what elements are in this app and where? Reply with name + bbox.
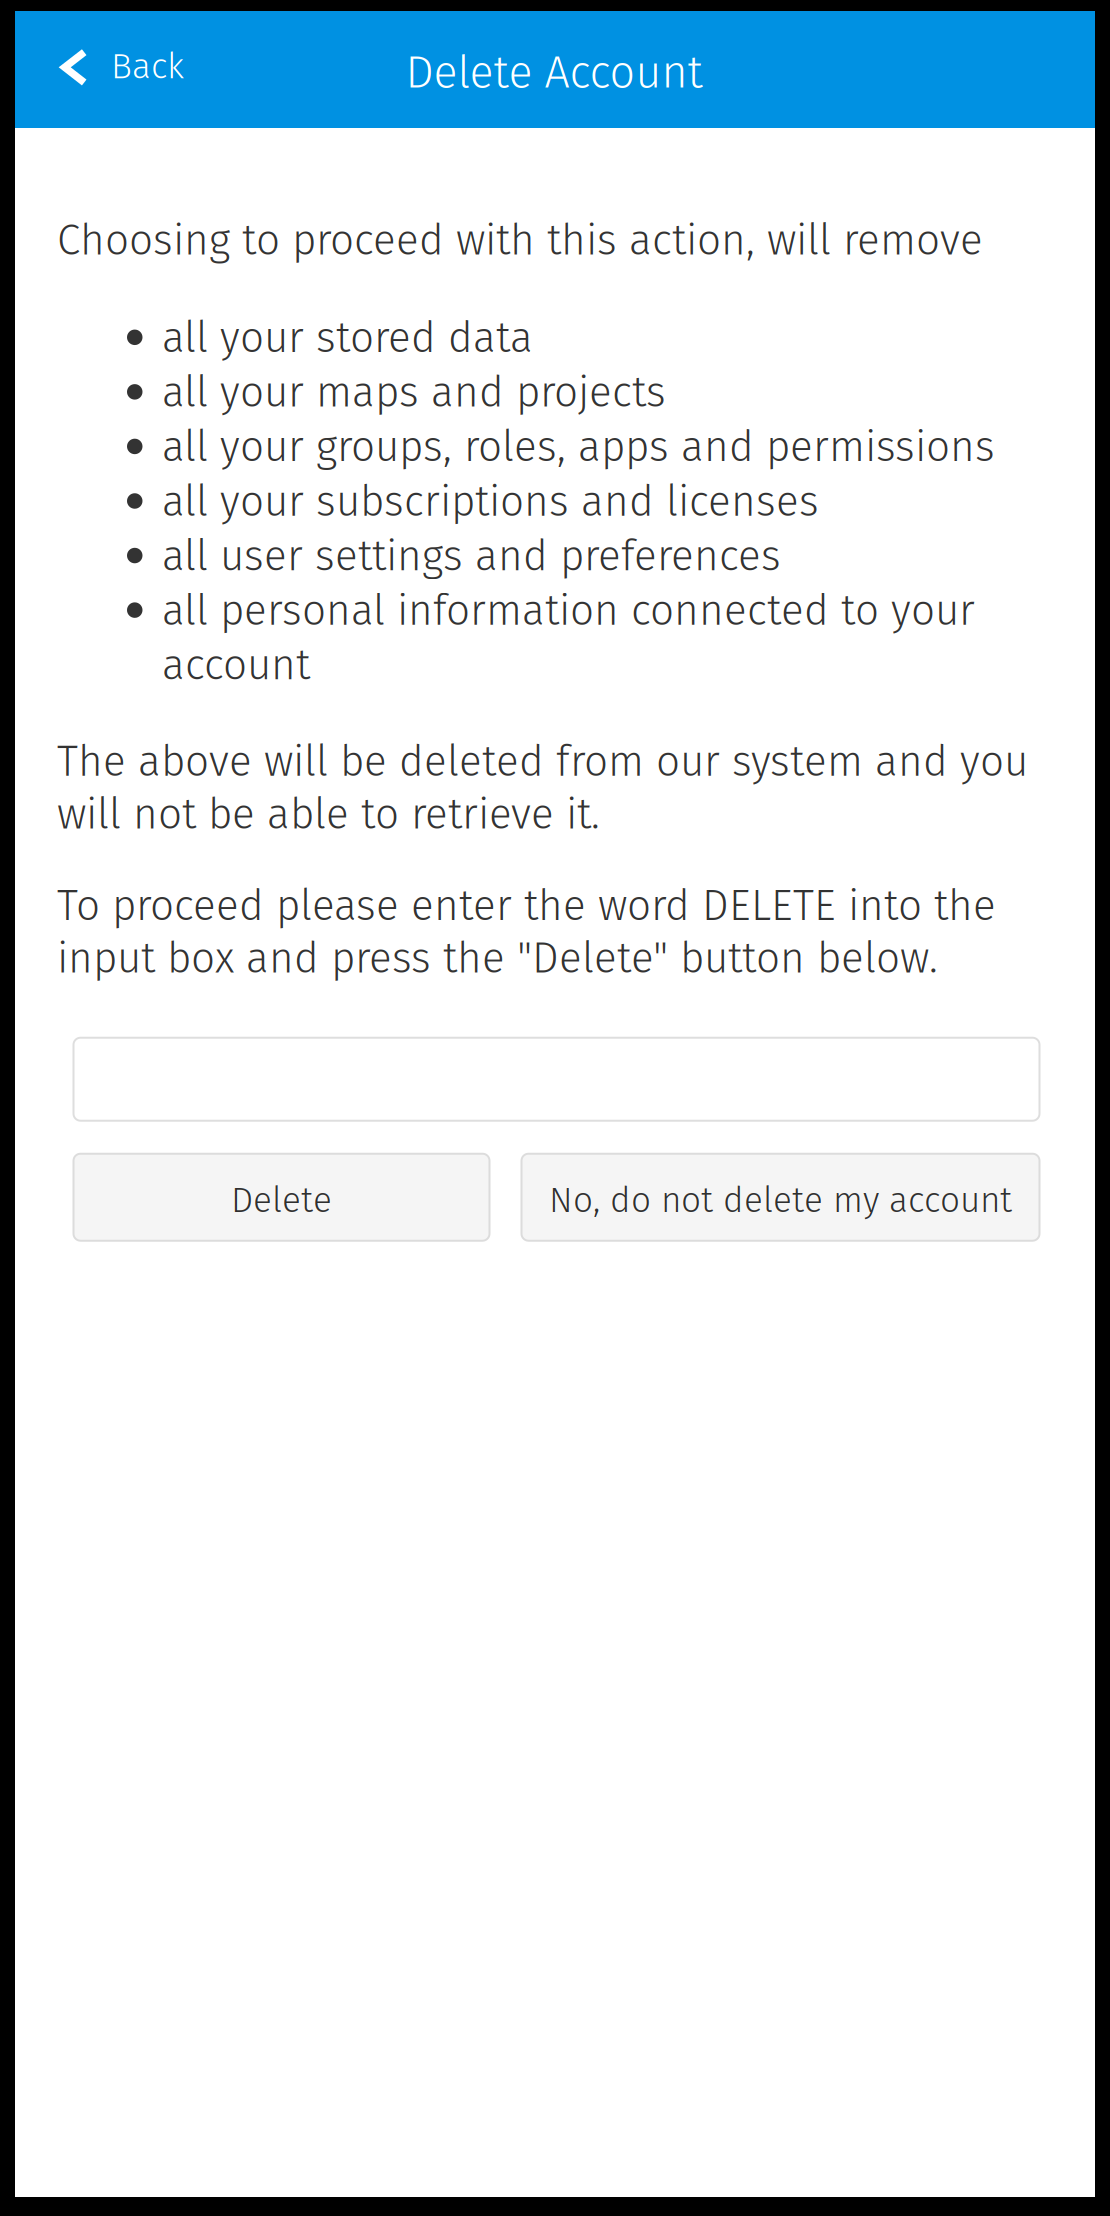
staticText: Delete Account <box>405 46 702 99</box>
staticText: The above will be deleted from our syste… <box>57 736 1028 840</box>
staticText: Delete <box>231 1179 332 1221</box>
staticText: all user settings and preferences <box>162 531 781 581</box>
staticText: all your stored data <box>162 313 533 363</box>
staticText: Back <box>111 45 184 87</box>
button[interactable]: Back <box>15 11 208 127</box>
button[interactable]: No, do not delete my account <box>521 1154 1039 1241</box>
staticText: all your groups, roles, apps and permiss… <box>162 422 995 472</box>
button[interactable]: Delete <box>73 1154 489 1241</box>
staticText: all your subscriptions and licenses <box>162 476 819 527</box>
staticText: all your maps and projects <box>162 367 666 418</box>
staticText: To proceed please enter the word DELETE … <box>57 881 996 984</box>
button[interactable]: Type DELETE to confirm <box>73 1038 1039 1121</box>
staticText: No, do not delete my account <box>549 1179 1012 1221</box>
staticText: all personal information connected to yo… <box>162 585 975 690</box>
staticText: Choosing to proceed with this action, wi… <box>57 215 983 266</box>
